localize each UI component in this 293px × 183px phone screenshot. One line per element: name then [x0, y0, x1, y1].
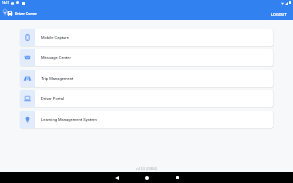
button[interactable]: Learning Management System — [20, 111, 273, 128]
button[interactable]: LOGOUT — [269, 10, 289, 19]
staticText: Learning Management System — [41, 117, 97, 122]
button[interactable]: Message Center — [20, 49, 273, 66]
staticText: Driver Portal — [41, 96, 64, 101]
button[interactable]: Mobile Capture — [20, 29, 273, 46]
button[interactable]: Recents — [162, 172, 192, 183]
staticText: LOGOUT — [271, 12, 287, 17]
staticText: Trip Management — [41, 76, 74, 81]
button[interactable]: Trip Management — [20, 70, 273, 87]
button[interactable]: Back — [102, 172, 132, 183]
staticText: Mobile Capture — [41, 35, 69, 40]
staticText: Message Center — [41, 55, 71, 60]
staticText: 16:11 — [2, 1, 10, 4]
staticText: v 4.3.0 (3.0804) — [0, 167, 293, 171]
button[interactable]: Home — [132, 172, 162, 183]
button[interactable]: Driver Portal — [20, 90, 273, 107]
staticText: Driver Corner — [15, 12, 37, 16]
